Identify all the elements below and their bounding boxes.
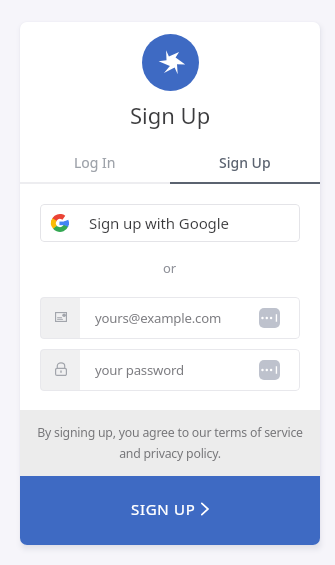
staticText: Log In	[74, 153, 116, 172]
button[interactable]: Show options	[259, 360, 280, 380]
button[interactable]: Sign up with Google	[40, 204, 300, 242]
staticText: or	[163, 259, 177, 277]
button[interactable]: Show options	[259, 308, 280, 328]
staticText: By signing up, you agree to our terms of…	[37, 424, 303, 462]
staticText: Sign up with Google	[89, 213, 229, 233]
staticText: Sign Up	[219, 153, 271, 172]
button[interactable]: your password	[40, 349, 300, 391]
staticText: yours@example.com	[95, 309, 259, 327]
button[interactable]: Sign Up	[170, 140, 320, 184]
button[interactable]: yours@example.com	[40, 297, 300, 339]
button[interactable]: SIGN UP	[20, 476, 320, 545]
staticText: SIGN UP	[131, 499, 196, 519]
button[interactable]: Log In	[20, 140, 170, 184]
staticText: your password	[95, 361, 259, 379]
staticText: Sign Up	[130, 100, 211, 130]
